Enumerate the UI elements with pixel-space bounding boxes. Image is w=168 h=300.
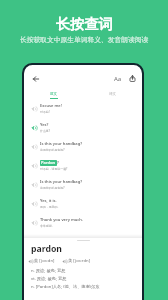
staticText: pardon <box>31 243 62 255</box>
staticText: 对不起! <box>40 110 50 114</box>
staticText: 非常感谢。 <box>40 224 55 228</box>
staticText: Yes, it is. <box>40 198 57 204</box>
staticText: 英 [ˈpɑːdn] <box>34 258 55 264</box>
staticText: n. 原谅; 赦免; 宽恕 <box>31 268 66 274</box>
button[interactable]: Back <box>30 73 42 85</box>
button[interactable]: Excuse me! <box>24 99 142 118</box>
staticText: 长按获取文中原生单词释义、发音朗读阅读 <box>20 36 149 45</box>
staticText: Aa <box>114 75 122 83</box>
staticText: Is this your handbag? <box>40 141 83 147</box>
staticText: Yes? <box>40 122 49 128</box>
staticText: 原文 <box>50 92 58 97</box>
staticText: 是的，是我的。 <box>40 205 61 209</box>
button[interactable]: Yes, it is. <box>24 194 142 213</box>
button[interactable]: Is this your handbag? <box>24 175 142 194</box>
staticText: 美 [ˈpɑːrdn] <box>68 258 91 264</box>
staticText: Pardon <box>41 160 56 166</box>
staticText: Thank you very much. <box>40 217 84 223</box>
staticText: 长按查词 <box>56 15 113 33</box>
staticText: 这是您的手提包吗? <box>40 148 65 152</box>
button[interactable]: Font size <box>111 72 124 85</box>
button[interactable]: 原文 <box>24 89 83 101</box>
staticText: vt. 原谅; 赦免; 宽恕 <box>31 276 67 282</box>
staticText: 对不起，请再说一遍? <box>40 167 68 171</box>
staticText: Is this your handbag? <box>40 179 83 185</box>
staticText: ? <box>57 160 59 166</box>
staticText: 什么事? <box>40 129 50 133</box>
button[interactable]: Share <box>126 72 139 85</box>
button[interactable]: Thank you very much. <box>24 213 142 232</box>
button[interactable]: Pardon <box>24 156 142 175</box>
staticText: 译文 <box>109 92 117 97</box>
staticText: 这是您的手提包吗? <box>40 186 65 190</box>
button[interactable]: 译文 <box>83 89 142 101</box>
button[interactable]: Yes? <box>24 118 142 137</box>
staticText: Excuse me! <box>40 103 62 109</box>
button[interactable]: Is this your handbag? <box>24 137 142 156</box>
staticText: n. [Pardon]人名; (德、法、捷)帕尔东 <box>31 284 100 290</box>
